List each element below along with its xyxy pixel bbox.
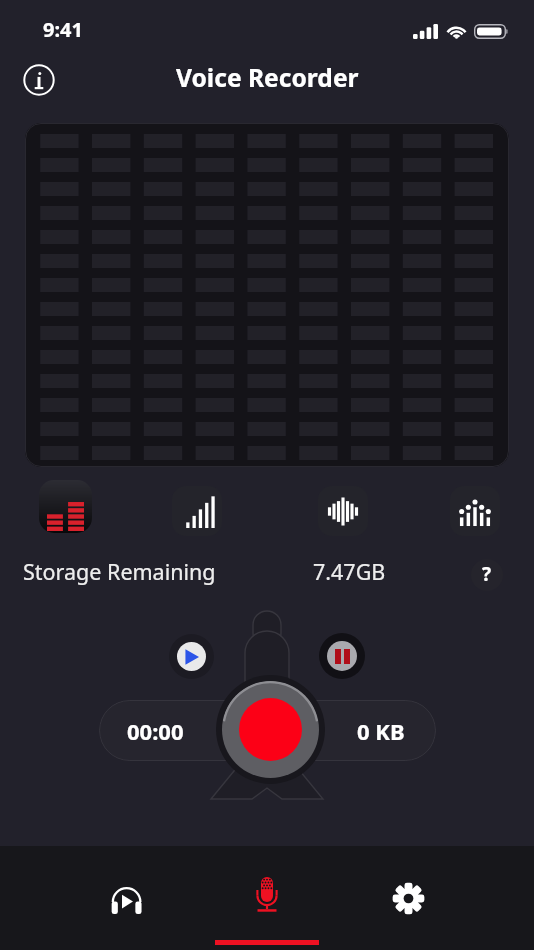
staticText: ?	[482, 561, 492, 587]
button[interactable]: Levels	[172, 486, 222, 536]
button[interactable]: Recordings	[94, 868, 158, 932]
button[interactable]: Info	[15, 56, 63, 104]
button[interactable]: Help	[471, 559, 503, 591]
button[interactable]: Pause	[319, 633, 365, 679]
button[interactable]: Equalizer	[39, 480, 92, 533]
staticText: 7.47GB	[313, 557, 386, 586]
button[interactable]: Waveform	[318, 486, 368, 536]
staticText: 0 KB	[357, 716, 405, 746]
button[interactable]: Statistics	[450, 486, 500, 536]
button[interactable]: Play	[169, 634, 214, 679]
staticText: 00:00	[127, 716, 184, 746]
button[interactable]: Record	[216, 675, 325, 784]
staticText: Storage Remaining	[23, 557, 216, 586]
button[interactable]: Settings	[376, 866, 440, 930]
button[interactable]: Record	[235, 862, 299, 926]
staticText: Voice Recorder	[176, 61, 359, 95]
staticText: 9:41	[43, 16, 83, 43]
